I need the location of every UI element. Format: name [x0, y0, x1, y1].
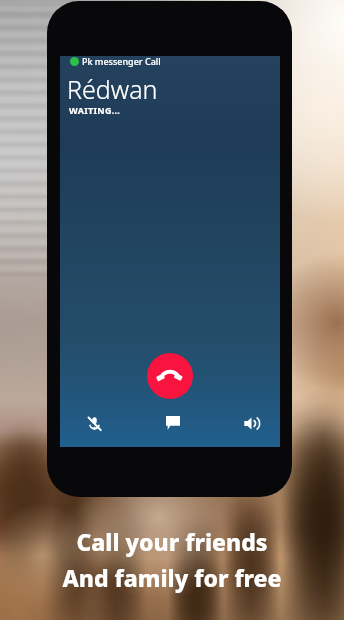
button[interactable]: Mute: [82, 411, 106, 435]
staticText: Rédwan: [67, 72, 158, 106]
staticText: Call your friends: [76, 526, 268, 557]
staticText: WAITING...: [69, 104, 121, 116]
button[interactable]: Speaker: [239, 411, 263, 435]
staticText: Pk messenger Call: [82, 55, 161, 67]
staticText: And family for free: [62, 562, 282, 593]
button[interactable]: End call: [147, 353, 193, 399]
button[interactable]: Chat: [161, 411, 185, 435]
